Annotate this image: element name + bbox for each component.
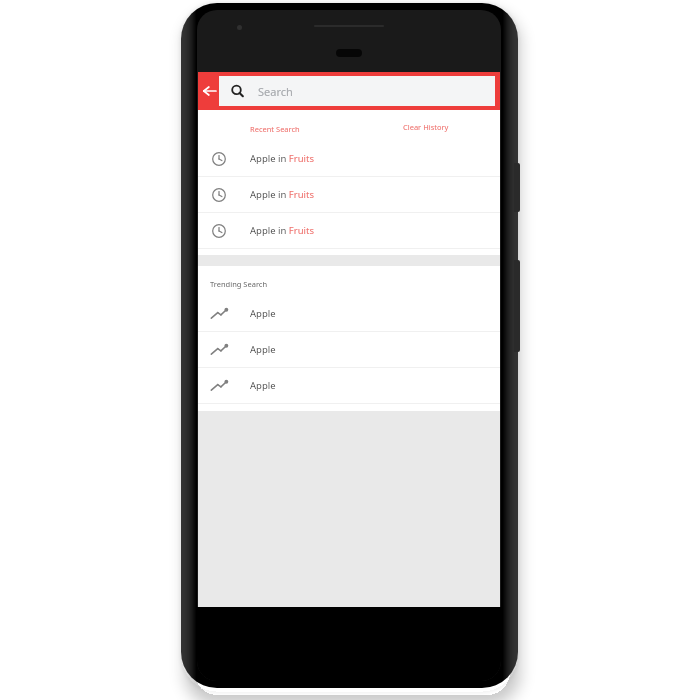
- button[interactable]: Apple in Fruits: [198, 213, 500, 249]
- staticText: Apple: [250, 379, 276, 392]
- button[interactable]: Search: [219, 76, 495, 106]
- button[interactable]: Apple: [198, 368, 500, 404]
- staticText: Apple: [250, 307, 276, 320]
- button[interactable]: Clear History: [398, 118, 454, 136]
- button[interactable]: Apple: [198, 332, 500, 368]
- staticText: Trending Search: [210, 279, 268, 289]
- staticText: Clear History: [403, 122, 449, 132]
- button[interactable]: Apple: [198, 296, 500, 332]
- staticText: Recent Search: [250, 124, 300, 134]
- staticText: Apple in Fruits: [250, 152, 314, 165]
- button[interactable]: Apple in Fruits: [198, 141, 500, 177]
- staticText: Apple in Fruits: [250, 188, 314, 201]
- staticText: Apple: [250, 343, 276, 356]
- button[interactable]: Back: [199, 72, 220, 110]
- staticText: Apple in Fruits: [250, 224, 314, 237]
- button[interactable]: Apple in Fruits: [198, 177, 500, 213]
- staticText: Search: [258, 84, 293, 99]
